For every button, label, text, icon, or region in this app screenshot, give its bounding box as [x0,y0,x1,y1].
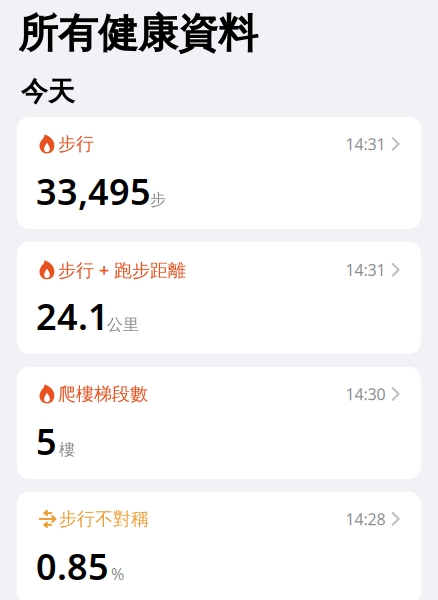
staticText: 14:30 [346,383,386,404]
button[interactable]: 步行不對稱 [17,492,421,600]
staticText: 步行 + 跑步距離 [58,258,186,282]
staticText: 今天 [21,75,75,108]
button[interactable]: 爬樓梯段數 [17,367,421,479]
staticText: 所有健康資料 [18,9,258,58]
staticText: 14:28 [346,508,386,529]
staticText: 步行 [58,133,94,155]
staticText: 公里 [107,315,139,334]
staticText: 0.85 [36,542,109,590]
staticText: 爬樓梯段數 [58,383,148,405]
staticText: 5 [36,417,57,465]
staticText: 步行不對稱 [59,508,149,530]
button[interactable]: 步行 + 跑步距離 [17,242,421,354]
staticText: 14:31 [346,259,386,280]
staticText: 步 [150,190,166,209]
staticText: 24.1 [36,292,109,340]
staticText: 33,495 [36,167,151,215]
staticText: 14:31 [346,133,386,154]
staticText: % [111,563,124,584]
button[interactable]: 步行 [17,117,421,229]
staticText: 樓 [59,440,75,459]
